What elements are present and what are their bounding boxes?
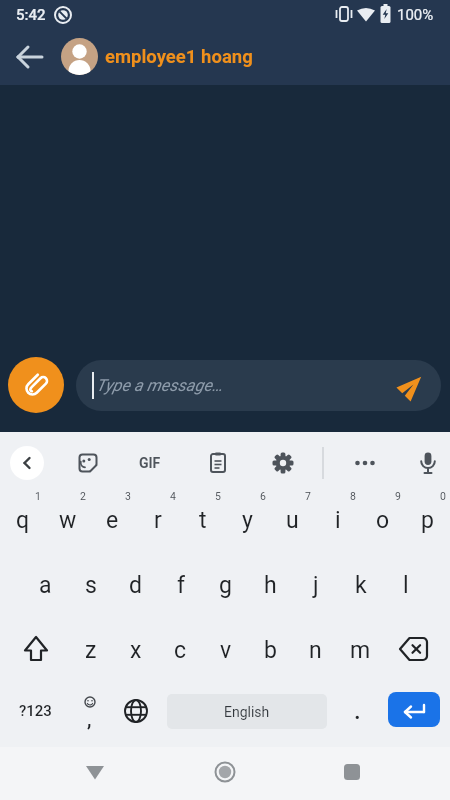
button[interactable]: r: [135, 490, 180, 550]
staticText: f: [177, 572, 185, 599]
staticText: m: [350, 637, 371, 664]
staticText: 5:42: [16, 6, 46, 24]
button[interactable]: a: [23, 555, 68, 615]
staticText: q: [16, 507, 30, 534]
staticText: 4: [170, 490, 176, 502]
button[interactable]: p: [405, 490, 450, 550]
button[interactable]: ,: [67, 688, 111, 734]
staticText: employee1 hoang: [105, 46, 253, 68]
staticText: h: [264, 572, 277, 599]
button[interactable]: n: [293, 620, 338, 680]
staticText: 1: [35, 490, 41, 502]
staticText: k: [355, 572, 367, 599]
staticText: 100%: [397, 6, 434, 24]
button[interactable]: Type a message…: [76, 360, 441, 411]
button[interactable]: [66, 441, 110, 485]
button[interactable]: y: [225, 490, 270, 550]
staticText: x: [130, 637, 142, 664]
staticText: 7: [305, 490, 311, 502]
button[interactable]: e: [90, 490, 135, 550]
button[interactable]: [13, 626, 58, 671]
button[interactable]: i: [315, 490, 360, 550]
staticText: o: [376, 507, 390, 534]
staticText: Type a message…: [96, 376, 223, 395]
button[interactable]: [396, 370, 428, 402]
button[interactable]: v: [203, 620, 248, 680]
staticText: v: [220, 637, 232, 664]
staticText: 5: [215, 490, 221, 502]
staticText: r: [154, 507, 162, 534]
staticText: l: [403, 572, 409, 599]
staticText: ?123: [19, 702, 52, 720]
staticText: 6: [260, 490, 266, 502]
button[interactable]: q: [0, 490, 45, 550]
button[interactable]: English: [167, 694, 327, 729]
staticText: 2: [80, 490, 86, 502]
staticText: z: [85, 637, 97, 664]
staticText: 8: [350, 490, 356, 502]
button[interactable]: s: [68, 555, 113, 615]
button[interactable]: z: [68, 620, 113, 680]
staticText: j: [313, 572, 319, 599]
staticText: 9: [395, 490, 401, 502]
button[interactable]: j: [293, 555, 338, 615]
button[interactable]: [390, 626, 436, 671]
button[interactable]: ?123: [10, 688, 60, 734]
button[interactable]: [8, 357, 64, 413]
button[interactable]: b: [248, 620, 293, 680]
button[interactable]: [196, 441, 240, 485]
button[interactable]: .: [335, 688, 379, 734]
button[interactable]: u: [270, 490, 315, 550]
button[interactable]: [388, 692, 440, 727]
button[interactable]: employee1 hoang: [105, 35, 253, 79]
staticText: n: [309, 637, 322, 664]
staticText: u: [286, 507, 299, 534]
button[interactable]: h: [248, 555, 293, 615]
staticText: s: [85, 572, 97, 599]
staticText: e: [106, 507, 119, 534]
staticText: 0: [440, 490, 446, 502]
button[interactable]: f: [158, 555, 203, 615]
button[interactable]: w: [45, 490, 90, 550]
button[interactable]: k: [338, 555, 383, 615]
button[interactable]: [261, 441, 305, 485]
staticText: d: [129, 572, 142, 599]
button[interactable]: x: [113, 620, 158, 680]
button[interactable]: c: [158, 620, 203, 680]
button[interactable]: t: [180, 490, 225, 550]
staticText: p: [421, 507, 434, 534]
button[interactable]: g: [203, 555, 248, 615]
button[interactable]: [343, 441, 387, 485]
staticText: b: [264, 637, 277, 664]
staticText: .: [354, 697, 361, 725]
staticText: t: [199, 507, 207, 534]
button[interactable]: GIF: [128, 441, 172, 485]
button[interactable]: l: [383, 555, 428, 615]
button[interactable]: [73, 750, 117, 794]
button[interactable]: m: [338, 620, 383, 680]
staticText: i: [335, 507, 341, 534]
staticText: y: [242, 507, 253, 534]
button[interactable]: [330, 750, 374, 794]
button[interactable]: [406, 441, 450, 485]
staticText: GIF: [139, 455, 161, 471]
staticText: w: [59, 507, 77, 534]
staticText: ,: [87, 707, 92, 730]
staticText: English: [224, 704, 270, 720]
button[interactable]: [113, 688, 158, 734]
staticText: 3: [125, 490, 131, 502]
button[interactable]: d: [113, 555, 158, 615]
button[interactable]: [8, 35, 52, 79]
staticText: c: [174, 637, 187, 664]
button[interactable]: [10, 446, 44, 480]
button[interactable]: o: [360, 490, 405, 550]
button[interactable]: [203, 750, 247, 794]
staticText: a: [39, 572, 52, 599]
staticText: g: [219, 572, 232, 599]
